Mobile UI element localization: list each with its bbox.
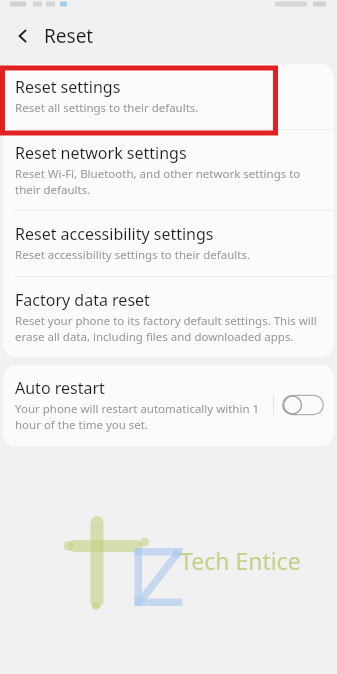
staticText: Reset Wi-Fi, Bluetooth, and other networ… — [15, 166, 320, 197]
staticText: Tech Entice — [180, 545, 301, 576]
button[interactable]: Auto restart — [3, 365, 334, 446]
button[interactable]: Reset settings — [3, 64, 334, 129]
staticText: Reset network settings — [15, 142, 187, 164]
staticText: Your phone will restart automatically wi… — [15, 401, 267, 432]
button[interactable]: Back — [5, 18, 41, 54]
staticText: Reset accessibility settings to their de… — [15, 247, 250, 263]
staticText: Auto restart — [15, 377, 105, 399]
staticText: Reset settings — [15, 76, 121, 98]
button[interactable]: Factory data reset — [3, 277, 334, 357]
staticText: Reset your phone to its factory default … — [15, 313, 320, 344]
staticText: Reset — [44, 23, 94, 49]
staticText: Factory data reset — [15, 289, 150, 311]
staticText: Reset accessibility settings — [15, 223, 214, 245]
button[interactable]: Reset accessibility settings — [3, 211, 334, 276]
button[interactable]: Auto restart toggle — [282, 393, 324, 417]
staticText: Reset all settings to their defaults. — [15, 100, 199, 116]
button[interactable]: Reset network settings — [3, 130, 334, 210]
